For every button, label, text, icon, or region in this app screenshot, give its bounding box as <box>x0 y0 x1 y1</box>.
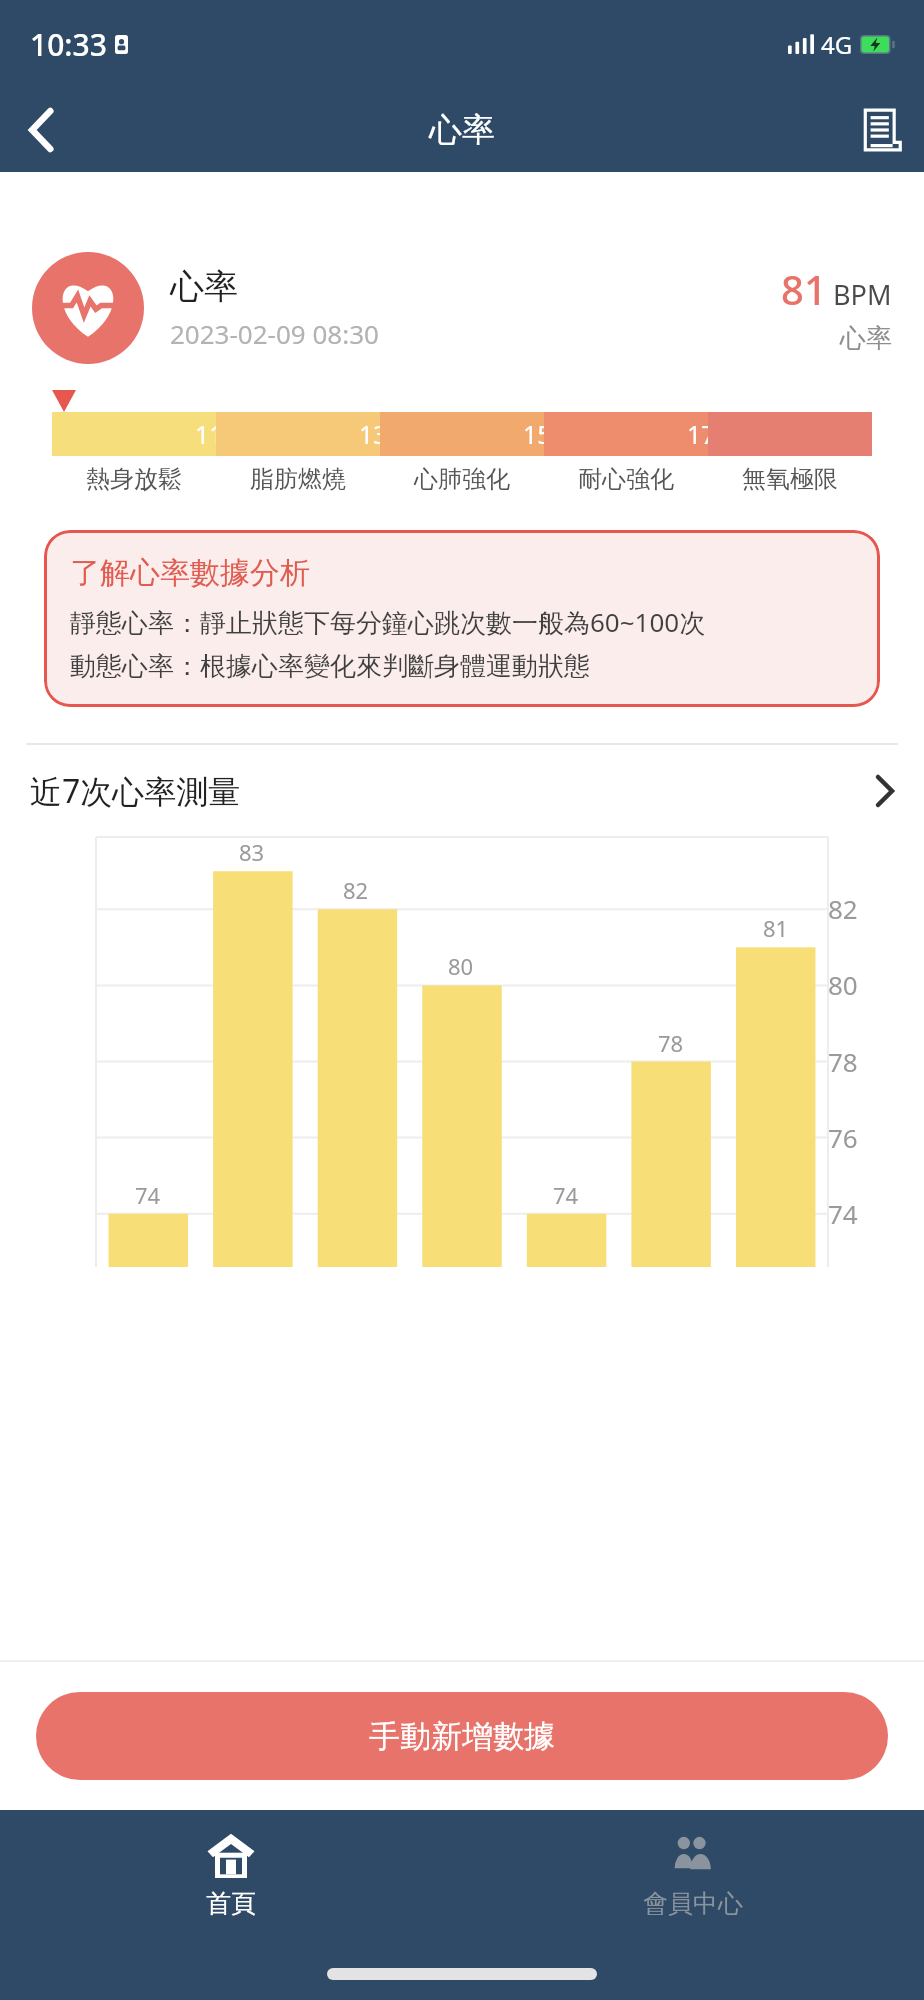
staticText: 首頁 <box>206 1888 256 1919</box>
staticText: 熱身放鬆 <box>86 464 182 494</box>
staticText: 動態心率：根據心率變化來判斷身體運動狀態 <box>70 650 590 683</box>
staticText: 78 <box>828 1044 858 1079</box>
staticText: 83 <box>239 837 265 867</box>
button[interactable]: 近7次心率測量 <box>0 745 924 837</box>
button[interactable]: 首頁 <box>0 1810 462 1940</box>
staticText: 82 <box>343 875 369 905</box>
button[interactable]: 會員中心 <box>462 1810 924 1940</box>
staticText: 心肺強化 <box>414 464 510 494</box>
staticText: 137 <box>359 417 402 451</box>
staticText: 176 <box>687 417 730 451</box>
staticText: 耐心強化 <box>578 464 674 494</box>
staticText: 無氧極限 <box>742 464 838 494</box>
staticText: 156 <box>523 417 566 451</box>
staticText: BPM <box>833 276 892 313</box>
staticText: 81 <box>763 913 789 943</box>
staticText: 81 <box>781 262 827 316</box>
staticText: 74 <box>828 1196 858 1231</box>
staticText: 76 <box>828 1120 858 1155</box>
staticText: 74 <box>135 1180 161 1210</box>
staticText: 心率 <box>429 109 495 151</box>
staticText: 74 <box>553 1180 579 1210</box>
staticText: 80 <box>828 967 858 1002</box>
button[interactable]: Records <box>840 88 924 172</box>
button[interactable]: Back <box>0 88 84 172</box>
staticText: 78 <box>658 1028 684 1058</box>
staticText: 了解心率數據分析 <box>70 554 310 592</box>
staticText: 117 <box>195 417 238 451</box>
staticText: 脂肪燃燒 <box>250 464 346 494</box>
staticText: 4G <box>821 28 853 61</box>
staticText: 手動新增數據 <box>369 1717 555 1756</box>
staticText: 82 <box>828 891 858 926</box>
staticText: 2023-02-09 08:30 <box>170 316 379 351</box>
staticText: 10:33 <box>30 24 107 65</box>
staticText: 心率 <box>840 322 892 355</box>
staticText: 心率 <box>170 265 238 308</box>
staticText: 會員中心 <box>643 1888 743 1919</box>
staticText: 80 <box>448 951 474 981</box>
staticText: 近7次心率測量 <box>30 769 241 813</box>
button[interactable]: 手動新增數據 <box>36 1692 888 1780</box>
staticText: 靜態心率：靜止狀態下每分鐘心跳次數一般為60~100次 <box>70 604 706 640</box>
